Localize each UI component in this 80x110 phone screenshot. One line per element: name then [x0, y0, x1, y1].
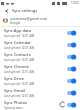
button[interactable]	[67, 52, 76, 62]
staticText: Sync Drive	[4, 76, 24, 81]
staticText: Last synced 12:01 AM	[4, 94, 35, 98]
button[interactable]: Sync Contacts	[0, 51, 80, 63]
staticText: Last synced 12:01 AM	[4, 58, 35, 62]
staticText: Sync App data	[4, 28, 32, 33]
staticText: Sync Calendar	[4, 40, 31, 45]
staticText: Sync Photos	[4, 100, 28, 105]
staticText: Last synced 12:01 AM	[4, 46, 35, 50]
button[interactable]: Sync Calendar	[0, 39, 80, 51]
button[interactable]: Sync Gmail	[0, 87, 80, 99]
button[interactable]: username@gmail.com	[0, 15, 80, 26]
button[interactable]: Sync Chrome	[0, 63, 80, 75]
button[interactable]	[67, 28, 76, 38]
staticText: Sync Gmail	[4, 88, 25, 93]
staticText: Sync Chrome	[4, 64, 30, 69]
staticText: Syncing now...	[4, 106, 24, 110]
button[interactable]: Sync Photos	[0, 99, 80, 110]
staticText: Last synced 12:01 AM	[4, 70, 35, 74]
button[interactable]: Sync Drive	[0, 75, 80, 87]
button[interactable]	[67, 40, 76, 50]
staticText: Sync Contacts	[4, 52, 31, 57]
staticText: Last synced 12:01 AM	[4, 82, 35, 86]
staticText: Google	[10, 21, 21, 25]
staticText: Last synced 12:01 AM	[4, 34, 35, 38]
staticText: username@gmail.com	[10, 16, 47, 21]
button[interactable]: Back	[3, 7, 10, 14]
button[interactable]	[67, 64, 76, 74]
button[interactable]: Sync App data	[0, 27, 80, 39]
button[interactable]	[67, 88, 76, 98]
button[interactable]	[67, 76, 76, 86]
button[interactable]	[67, 100, 76, 110]
staticText: 10:02	[71, 1, 79, 5]
staticText: Sync settings	[12, 8, 38, 13]
